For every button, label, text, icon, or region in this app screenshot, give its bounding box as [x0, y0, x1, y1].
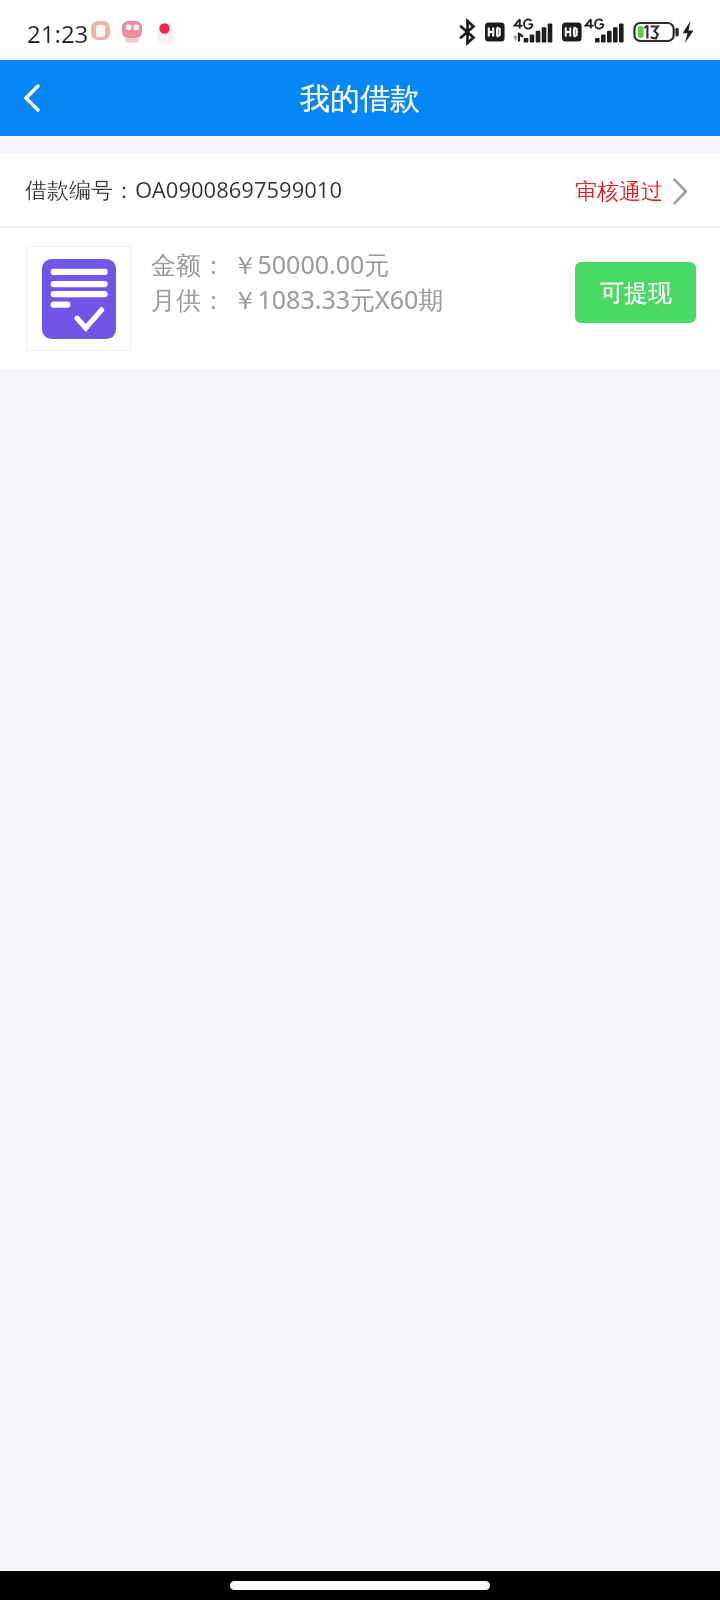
button[interactable]: 可提现 — [575, 262, 696, 323]
staticText: 审核通过 — [575, 178, 663, 206]
staticText: 可提现 — [600, 278, 672, 308]
staticText: 我的借款 — [300, 80, 420, 118]
staticText: 21:23 — [27, 17, 89, 50]
staticText: 月供： ￥1083.33元X60期 — [151, 282, 444, 316]
button[interactable]: 金额： ￥50000.00元 — [0, 228, 720, 369]
button[interactable]: 借款编号：OA09008697599010 — [0, 154, 720, 226]
staticText: 金额： ￥50000.00元 — [151, 247, 390, 281]
button[interactable]: Back — [0, 60, 64, 136]
staticText: 借款编号：OA09008697599010 — [25, 174, 342, 204]
